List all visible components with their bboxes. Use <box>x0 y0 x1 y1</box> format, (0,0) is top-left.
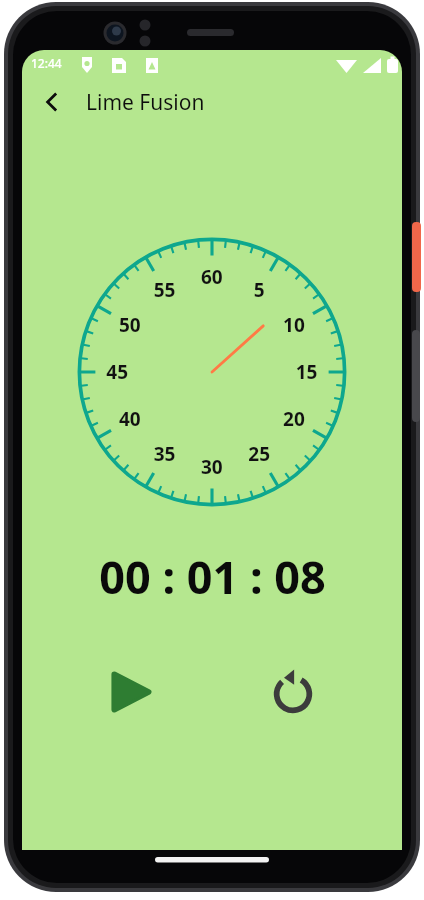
button[interactable]: Start timer <box>92 653 170 731</box>
button[interactable]: Back <box>28 78 76 126</box>
staticText: 12:44 <box>31 55 62 71</box>
staticText: Lime Fusion <box>86 88 205 117</box>
staticText: 00 : 01 : 08 <box>99 546 326 607</box>
button[interactable]: Reset timer <box>254 653 332 731</box>
